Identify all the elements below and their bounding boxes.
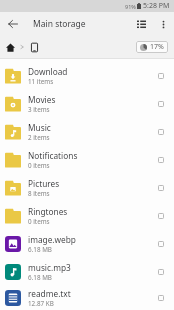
button[interactable]: Home (4, 41, 16, 53)
button[interactable]: Select Download (150, 62, 172, 90)
button[interactable]: Device storage (28, 41, 40, 53)
staticText: 0 items (28, 161, 50, 170)
button[interactable]: Select readme.txt (150, 286, 172, 310)
staticText: Pictures (28, 178, 60, 189)
staticText: 0 items (28, 217, 50, 226)
button[interactable]: Select Notifications (150, 146, 172, 174)
button[interactable]: More options (152, 12, 174, 36)
button[interactable]: View mode (130, 12, 152, 36)
staticText: 6.18 MB (28, 245, 52, 254)
staticText: 3 items (28, 105, 50, 114)
staticText: 6.18 MB (28, 273, 52, 282)
staticText: Notifications (28, 150, 78, 161)
staticText: Movies (28, 94, 56, 105)
staticText: Ringtones (28, 206, 68, 217)
staticText: music.mp3 (28, 262, 71, 273)
staticText: 12.87 KB (28, 299, 54, 308)
staticText: Download (28, 66, 68, 77)
staticText: image.webp (28, 234, 76, 245)
staticText: 5:28 PM (143, 1, 170, 11)
button[interactable]: Movies (0, 90, 174, 118)
staticText: Music (28, 122, 51, 133)
staticText: 8 items (28, 189, 50, 198)
staticText: 17% (150, 42, 164, 52)
button[interactable]: Select Music (150, 118, 172, 146)
staticText: Main storage (33, 18, 86, 30)
button[interactable]: Notifications (0, 146, 174, 174)
button[interactable]: Pictures (0, 174, 174, 202)
button[interactable]: 17% (136, 41, 168, 53)
button[interactable]: Back (0, 12, 26, 36)
button[interactable]: Ringtones (0, 202, 174, 230)
button[interactable]: Select image.webp (150, 230, 172, 258)
staticText: 2 items (28, 133, 50, 142)
staticText: 11 items (28, 77, 54, 86)
button[interactable]: music.mp3 (0, 258, 174, 286)
button[interactable]: Music (0, 118, 174, 146)
button[interactable]: Download (0, 62, 174, 90)
staticText: 91% (125, 3, 136, 10)
staticText: readme.txt (28, 288, 71, 299)
button[interactable]: image.webp (0, 230, 174, 258)
button[interactable]: Select Pictures (150, 174, 172, 202)
button[interactable]: readme.txt (0, 286, 174, 310)
button[interactable]: Select Ringtones (150, 202, 172, 230)
button[interactable]: Select Movies (150, 90, 172, 118)
button[interactable]: Select music.mp3 (150, 258, 172, 286)
